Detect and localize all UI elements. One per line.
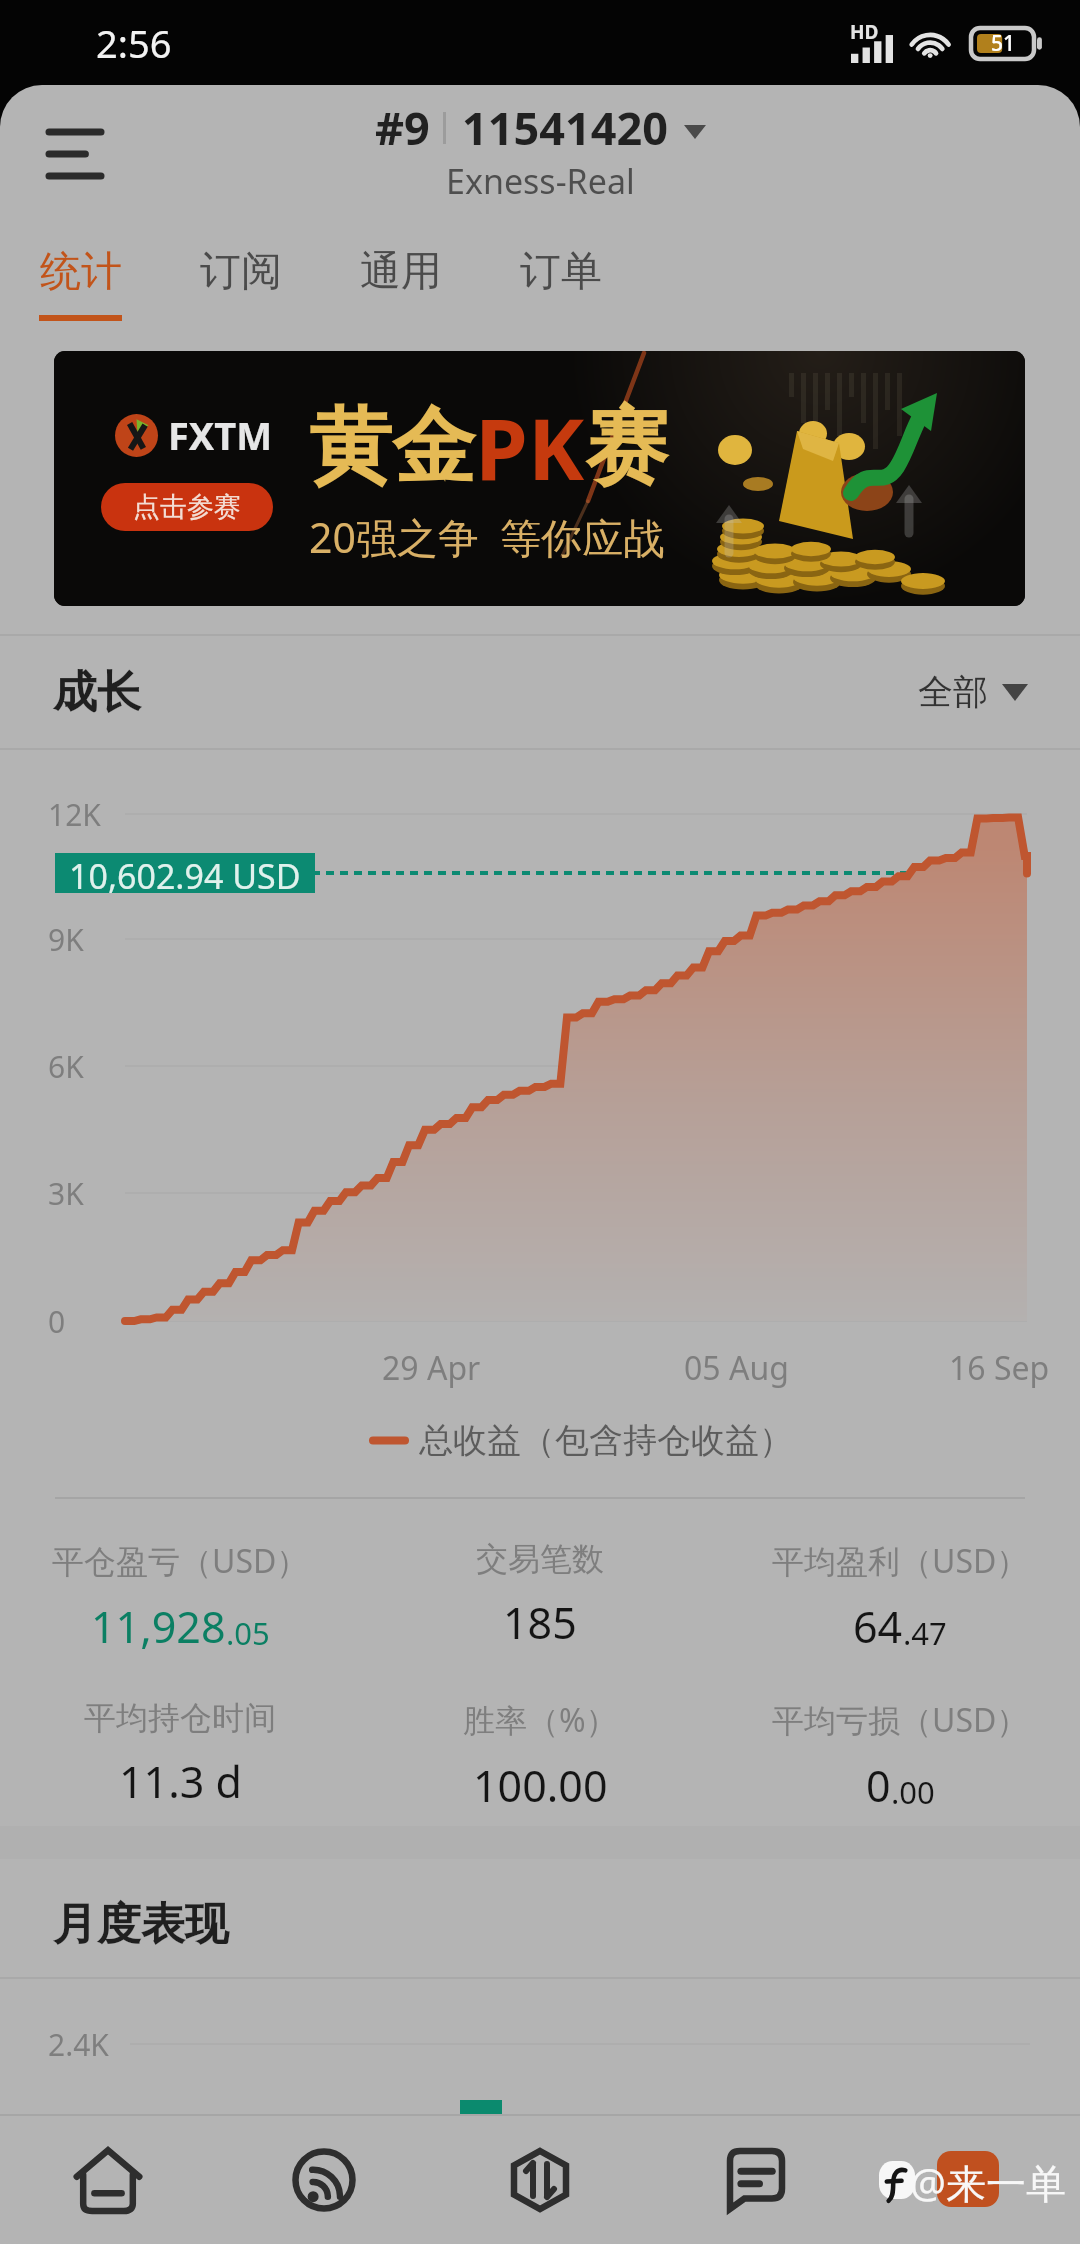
- button[interactable]: Home: [0, 2116, 216, 2243]
- staticText: 100.00: [473, 1756, 608, 1815]
- staticText: 9K: [48, 919, 84, 960]
- staticText: 平仓盈亏（USD）: [52, 1539, 309, 1583]
- staticText: 黄金: [309, 395, 475, 500]
- staticText: 05 Aug: [684, 1346, 789, 1390]
- button[interactable]: 通用: [321, 230, 481, 330]
- staticText: 总收益（包含持仓收益）: [419, 1419, 793, 1462]
- staticText: 51: [991, 29, 1016, 58]
- staticText: Exness-Real: [446, 158, 635, 204]
- button[interactable]: FXTM: [54, 351, 1025, 606]
- staticText: 2.4K: [48, 2024, 109, 2065]
- button[interactable]: #9: [375, 97, 706, 204]
- staticText: 订阅: [200, 246, 282, 298]
- button[interactable]: Trade: [432, 2116, 648, 2243]
- button[interactable]: 点击参赛: [101, 483, 273, 531]
- staticText: 12K: [48, 794, 101, 835]
- staticText: 11541420: [462, 97, 668, 158]
- staticText: 16 Sep: [949, 1346, 1050, 1390]
- staticText: .05: [226, 1612, 270, 1654]
- staticText: FXTM: [168, 409, 273, 461]
- staticText: 全部: [918, 670, 988, 714]
- staticText: 11.3 d: [119, 1752, 242, 1811]
- staticText: @来一单: [910, 2155, 1066, 2210]
- button[interactable]: 订单: [481, 230, 641, 330]
- staticText: 3K: [48, 1173, 84, 1214]
- staticText: 成长: [53, 665, 141, 720]
- staticText: 2:56: [96, 17, 172, 69]
- button[interactable]: 订阅: [161, 230, 321, 330]
- staticText: 统计: [40, 246, 122, 298]
- staticText: 点击参赛: [133, 490, 241, 524]
- staticText: 185: [503, 1593, 577, 1652]
- staticText: 29 Apr: [382, 1346, 481, 1390]
- staticText: 赛: [585, 395, 668, 500]
- button[interactable]: 统计: [0, 230, 161, 330]
- staticText: .00: [891, 1771, 935, 1813]
- button[interactable]: Menu: [22, 103, 102, 173]
- button[interactable]: 全部: [904, 660, 1080, 724]
- staticText: 交易笔数: [476, 1539, 604, 1579]
- staticText: 20强之争 等你应战: [309, 509, 665, 565]
- button[interactable]: Chat: [648, 2116, 864, 2243]
- staticText: HD: [850, 19, 879, 45]
- button[interactable]: Signals: [216, 2116, 432, 2243]
- staticText: 平均亏损（USD）: [772, 1698, 1029, 1742]
- staticText: #9: [375, 97, 430, 158]
- staticText: 通用: [360, 246, 442, 298]
- staticText: 月度表现: [53, 1897, 229, 1952]
- staticText: 11,928: [91, 1597, 226, 1656]
- staticText: 胜率（%）: [463, 1698, 618, 1742]
- staticText: PK: [475, 389, 585, 505]
- staticText: 订单: [520, 246, 602, 298]
- staticText: 64: [853, 1597, 903, 1656]
- staticText: 平均盈利（USD）: [772, 1539, 1029, 1583]
- staticText: 0: [48, 1301, 66, 1342]
- button[interactable]: Profile: [864, 2116, 1080, 2243]
- staticText: 0: [866, 1756, 891, 1815]
- staticText: 10,602.94 USD: [69, 853, 301, 893]
- staticText: 平均持仓时间: [84, 1698, 276, 1738]
- staticText: 6K: [48, 1046, 84, 1087]
- staticText: .47: [903, 1612, 947, 1654]
